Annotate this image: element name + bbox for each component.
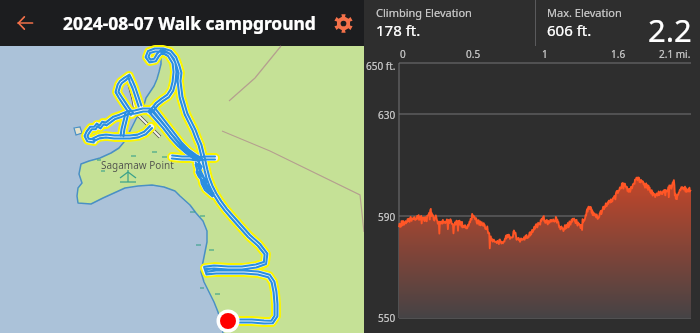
staticText: Climbing Elevation	[376, 5, 472, 20]
staticText: 1	[542, 47, 548, 61]
staticText: 2.2	[648, 9, 692, 51]
staticText: Sagamaw Point	[101, 158, 174, 172]
staticText: 590	[378, 210, 396, 224]
staticText: 650 ft.	[366, 59, 396, 73]
staticText: 630	[378, 108, 396, 122]
staticText: 178 ft.	[376, 20, 421, 40]
staticText: 550	[378, 311, 396, 325]
staticText: 606 ft.	[547, 20, 592, 40]
staticText: Max. Elevation	[547, 5, 622, 20]
button[interactable]: Settings	[323, 0, 364, 46]
staticText: 2.1 mi.	[659, 47, 691, 61]
staticText: 1.6	[611, 47, 626, 61]
staticText: 0	[400, 47, 406, 61]
staticText: 2024-08-07 Walk campground	[63, 11, 316, 35]
button[interactable]: Back	[0, 0, 50, 46]
staticText: 0.5	[466, 47, 481, 61]
